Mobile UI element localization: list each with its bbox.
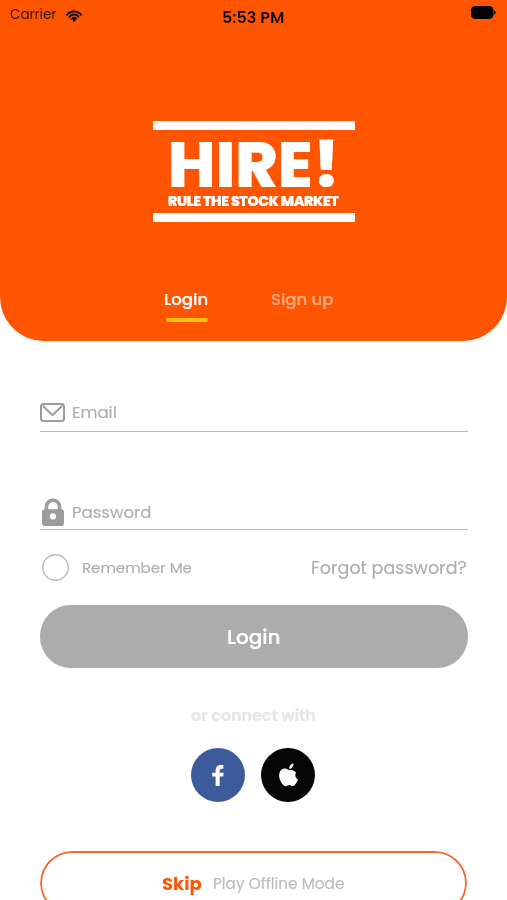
other: Wi-Fi signal [66,8,82,21]
staticText: Skip [162,871,202,896]
staticText: or connect with [191,704,316,726]
staticText: Login [164,288,209,311]
other: Battery full [471,6,496,19]
staticText: Remember Me [82,557,192,578]
staticText: Forgot password? [311,556,467,581]
staticText: Password [72,501,152,524]
staticText: Sign up [271,288,334,311]
button[interactable]: Sign in with Facebook [191,748,245,802]
staticText: Login [227,623,281,651]
button[interactable]: Login [40,605,468,668]
staticText: Email [72,401,117,424]
staticText: Play Offline Mode [213,873,345,894]
button[interactable]: Forgot password? [311,556,467,581]
button[interactable]: Remember Me [42,554,192,581]
button[interactable]: Sign up [271,288,334,311]
button[interactable]: Login [164,288,209,322]
staticText: HIRE! [168,120,340,210]
staticText: RULE THE STOCK MARKET [168,191,339,211]
staticText: 5:53 PM [222,6,285,28]
button[interactable]: Sign in with Apple [261,748,315,802]
staticText: Carrier [10,5,57,24]
button[interactable]: Skip [40,851,467,900]
button[interactable]: Email [40,401,117,424]
button[interactable]: Password [42,499,152,526]
